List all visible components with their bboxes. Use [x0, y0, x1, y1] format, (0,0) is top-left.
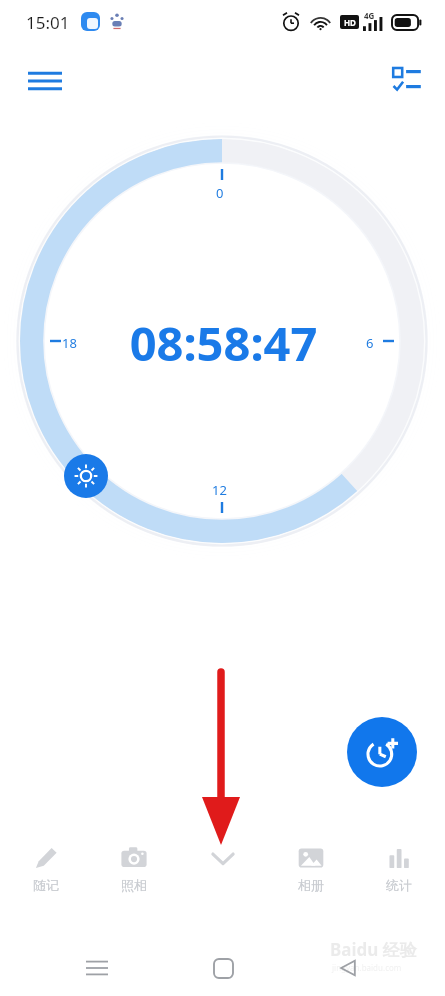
staticText: 08:58:47: [1, 311, 445, 375]
staticText: 0: [216, 184, 224, 202]
staticText: 照相: [121, 877, 147, 893]
staticText: jingyan.baidu.com: [332, 962, 402, 973]
staticText: 15:01: [26, 11, 70, 34]
button[interactable]: Task list: [381, 54, 433, 106]
staticText: 4G: [364, 10, 375, 21]
staticText: 18: [62, 334, 77, 352]
button[interactable]: Camera: [92, 836, 176, 900]
button[interactable]: Home: [195, 940, 251, 996]
staticText: 相册: [298, 877, 324, 893]
button[interactable]: Add timer: [347, 717, 417, 787]
staticText: 统计: [386, 877, 412, 893]
staticText: HD: [344, 17, 356, 28]
staticText: 随记: [33, 877, 59, 893]
button[interactable]: Back: [320, 940, 376, 996]
button[interactable]: Menu: [18, 54, 72, 108]
staticText: 12: [212, 481, 227, 499]
button[interactable]: Brightness: [64, 454, 108, 498]
button[interactable]: Album: [269, 836, 353, 900]
staticText: Baidu 经验: [330, 938, 417, 961]
button[interactable]: Statistics: [357, 836, 441, 900]
button[interactable]: Collapse: [181, 836, 265, 900]
button[interactable]: Recents: [69, 940, 125, 996]
staticText: 6: [366, 334, 374, 352]
button[interactable]: Note: [4, 836, 88, 900]
